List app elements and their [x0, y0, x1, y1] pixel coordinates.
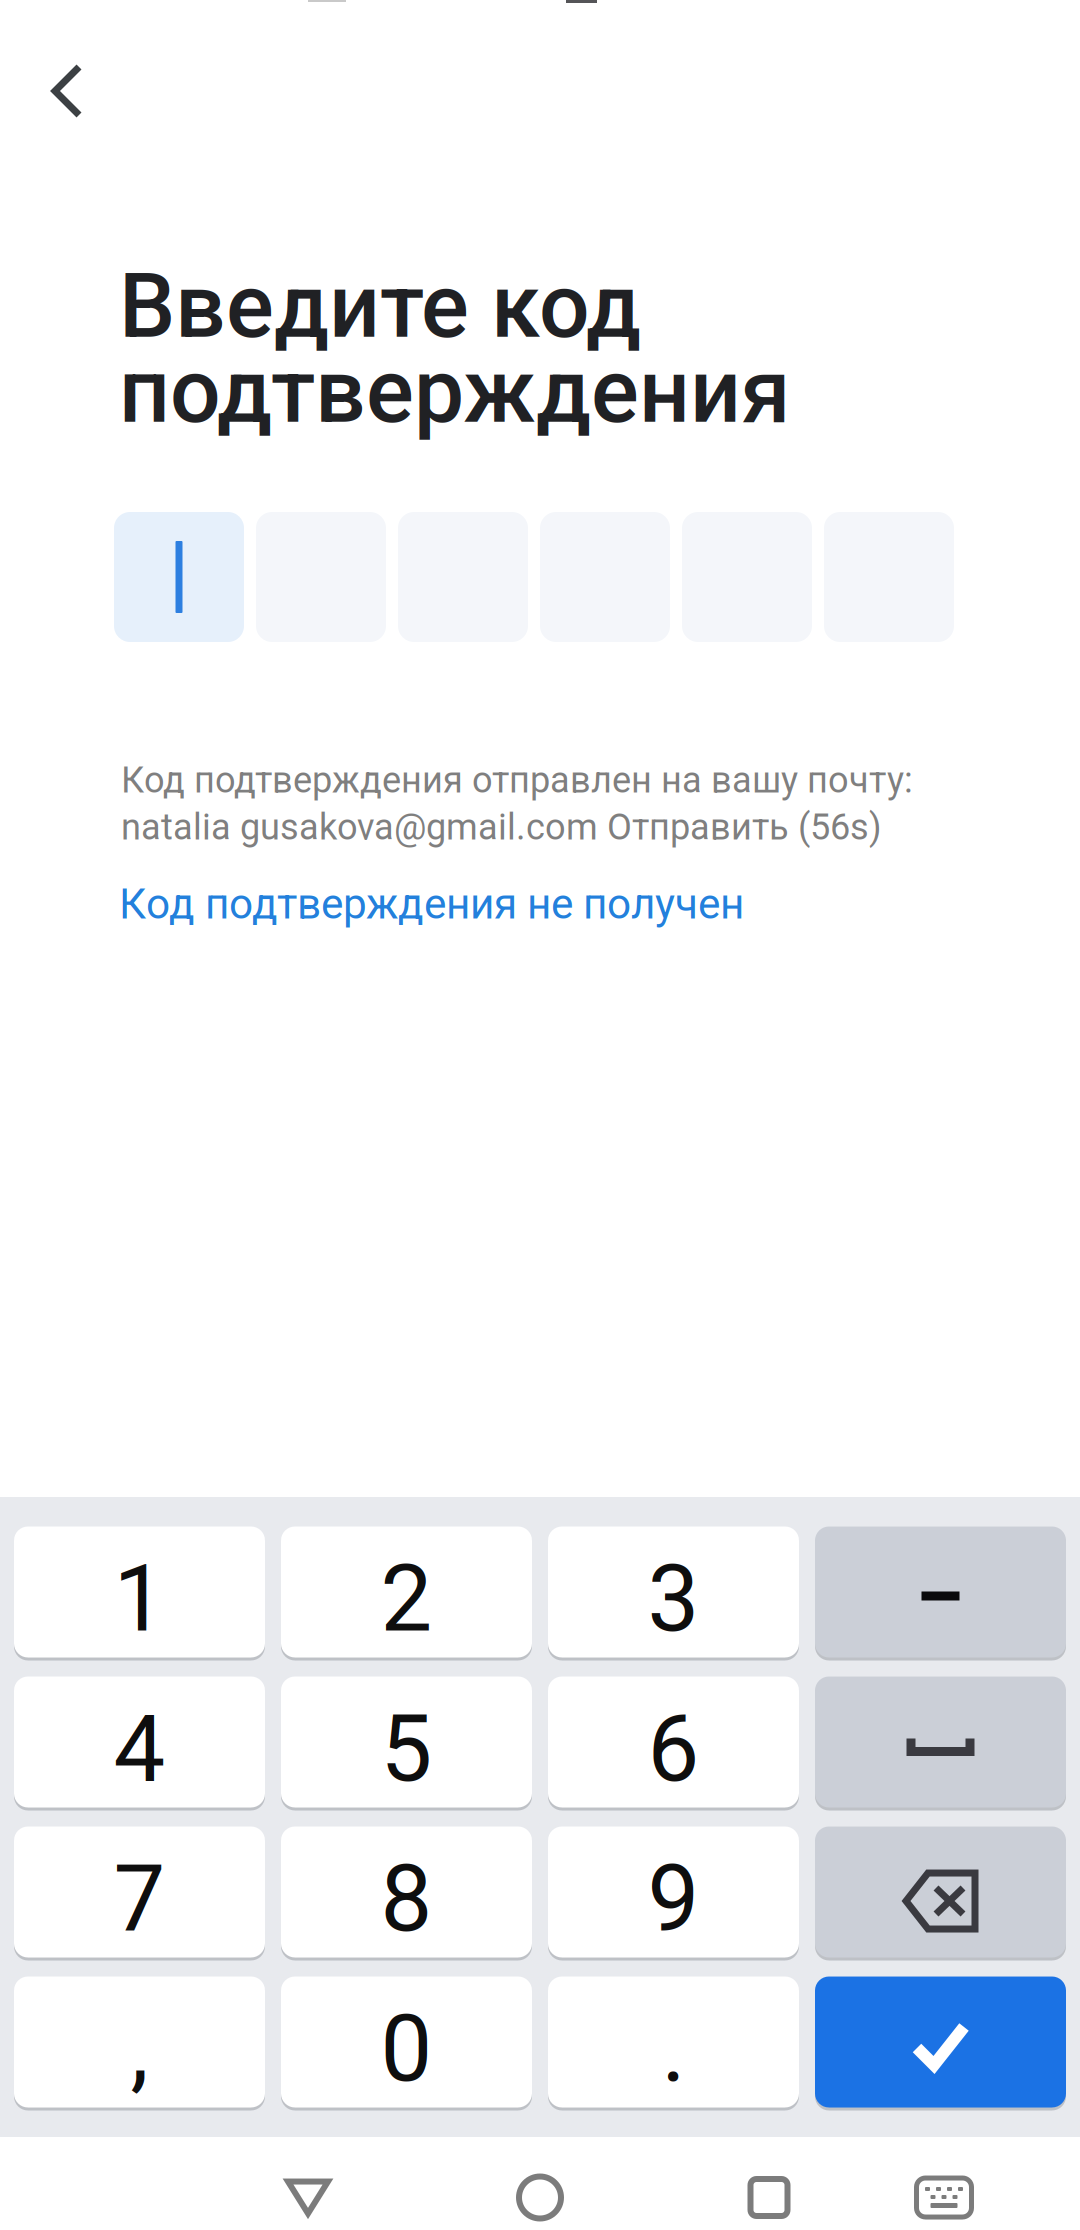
button[interactable]: Space: [815, 1675, 1066, 1809]
staticText: 0: [380, 1995, 432, 2103]
button[interactable]: ,: [14, 1975, 265, 2109]
button[interactable]: 6: [548, 1675, 799, 1809]
staticText: 9: [647, 1845, 699, 1953]
button[interactable]: Back: [238, 2151, 378, 2230]
button[interactable]: 4: [14, 1675, 265, 1809]
button[interactable]: 1: [14, 1525, 265, 1659]
button[interactable]: Recents: [699, 2151, 839, 2230]
button[interactable]: 5: [281, 1675, 532, 1809]
button[interactable]: 8: [281, 1825, 532, 1959]
button[interactable]: 3: [548, 1525, 799, 1659]
staticText: ,: [130, 1995, 148, 2103]
button[interactable]: Dash: [815, 1525, 1066, 1659]
button[interactable]: Keyboard: [874, 2151, 1014, 2230]
staticText: 7: [113, 1845, 165, 1953]
button[interactable]: Backspace: [815, 1825, 1066, 1959]
button[interactable]: 9: [548, 1825, 799, 1959]
staticText: 2: [380, 1545, 432, 1653]
button[interactable]: Code digit: [114, 512, 244, 642]
button[interactable]: Done: [815, 1975, 1066, 2109]
staticText: 5: [380, 1695, 432, 1803]
staticText: 4: [113, 1695, 165, 1803]
staticText: 3: [647, 1545, 699, 1653]
staticText: 6: [647, 1695, 699, 1803]
staticText: Код подтверждения отправлен на вашу почт…: [121, 759, 913, 801]
button[interactable]: 7: [14, 1825, 265, 1959]
button[interactable]: 2: [281, 1525, 532, 1659]
staticText: .: [661, 1995, 685, 2103]
button[interactable]: Back: [12, 36, 122, 146]
staticText: 1: [113, 1545, 165, 1653]
button[interactable]: Код подтверждения не получен: [119, 874, 999, 934]
staticText: 8: [380, 1845, 432, 1953]
staticText: natalia gusakova@gmail.com Отправить (56…: [121, 806, 882, 848]
staticText: Введите код: [119, 254, 641, 358]
staticText: подтверждения: [119, 339, 790, 443]
button[interactable]: 0: [281, 1975, 532, 2109]
button[interactable]: .: [548, 1975, 799, 2109]
staticText: Код подтверждения не получен: [119, 879, 744, 929]
button[interactable]: Home: [470, 2151, 610, 2230]
